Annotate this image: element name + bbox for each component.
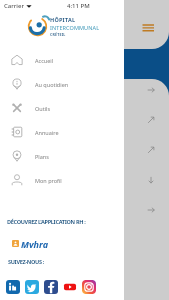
staticText: Outils [35, 105, 51, 112]
button[interactable]: Plans [0, 149, 124, 163]
button[interactable]: Accueil [0, 53, 124, 67]
button[interactable]: Open [145, 114, 157, 126]
button[interactable]: Facebook [44, 280, 58, 294]
staticText: 4:11 PM [67, 2, 90, 10]
button[interactable]: Outils [0, 101, 124, 115]
staticText: HÔPITAL [50, 16, 76, 23]
staticText: Annuaire [35, 129, 59, 136]
button[interactable]: Instagram [82, 280, 96, 294]
staticText: Mon profil [35, 177, 62, 184]
staticText: CRÉTEIL [50, 32, 66, 37]
staticText: Plans [35, 153, 49, 160]
staticText: Accueil [35, 57, 54, 64]
button[interactable]: Open [145, 84, 157, 96]
button[interactable]: Mon profil [0, 173, 124, 187]
button[interactable]: Myhra [12, 238, 48, 248]
staticText: SUIVEZ-NOUS : [8, 258, 45, 266]
button[interactable]: Au quotidien [0, 77, 124, 91]
button[interactable]: Open [145, 144, 157, 156]
staticText: Carrier [4, 2, 24, 10]
staticText: DÉCOUVREZ L'APPLICATION RH : [7, 218, 86, 226]
button[interactable]: YouTube [63, 280, 77, 294]
button[interactable]: LinkedIn [6, 280, 20, 294]
button[interactable]: Twitter [25, 280, 39, 294]
button[interactable]: Open [145, 174, 157, 186]
button[interactable]: Open navigation menu [138, 20, 158, 35]
button[interactable]: Open [145, 204, 157, 216]
staticText: INTERCOMMUNAL [50, 24, 100, 31]
button[interactable]: Annuaire [0, 125, 124, 139]
staticText: Au quotidien [35, 81, 69, 88]
staticText: Myhra [21, 238, 48, 248]
